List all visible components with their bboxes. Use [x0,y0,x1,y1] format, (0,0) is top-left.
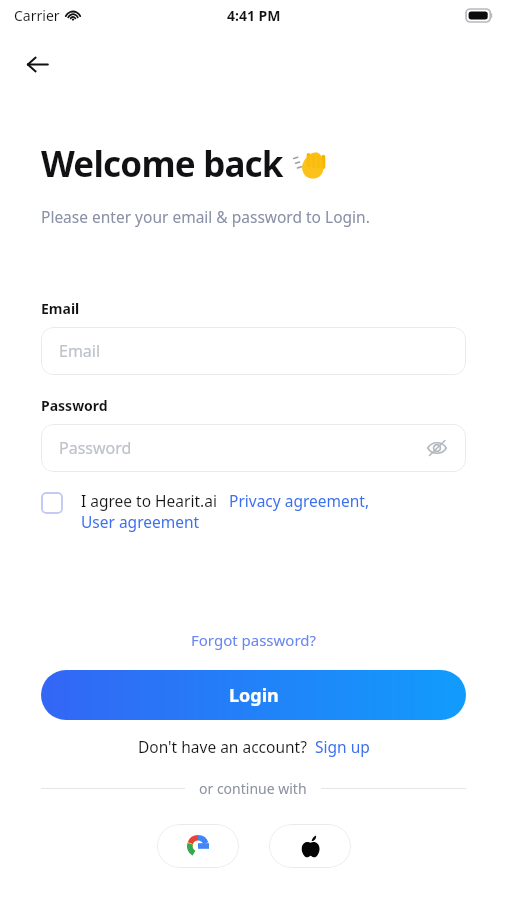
staticText: Email [59,340,101,362]
staticText: Welcome back [41,140,283,188]
staticText: Please enter your email & password to Lo… [41,206,370,227]
button[interactable]: Privacy agreement, [229,490,370,511]
staticText: Privacy agreement, [229,490,370,511]
staticText: Password [59,437,132,459]
button[interactable]: Forgot password? [185,628,323,652]
staticText: 4:41 PM [227,6,281,25]
button[interactable]: Agree to terms checkbox [41,492,63,514]
staticText: Password [41,396,108,415]
staticText: User agreement [81,511,200,532]
button[interactable]: Password [41,424,466,472]
button[interactable]: Continue with Google [157,824,239,868]
button[interactable]: Login [41,670,466,720]
staticText: or continue with [199,779,307,798]
staticText: I agree to Hearit.ai [81,490,217,511]
button[interactable]: Continue with Apple [269,824,351,868]
button[interactable]: Email [41,327,466,375]
staticText: Forgot password? [191,630,317,650]
staticText: Login [229,683,279,708]
staticText: Don't have an account? [138,736,307,757]
button[interactable]: Toggle password visibility [422,433,452,463]
staticText: Carrier [14,6,60,25]
button[interactable]: Back [17,44,57,84]
staticText: Email [41,299,80,318]
button[interactable]: Sign up [315,736,370,757]
button[interactable]: User agreement [81,511,200,532]
staticText: Sign up [315,736,370,757]
